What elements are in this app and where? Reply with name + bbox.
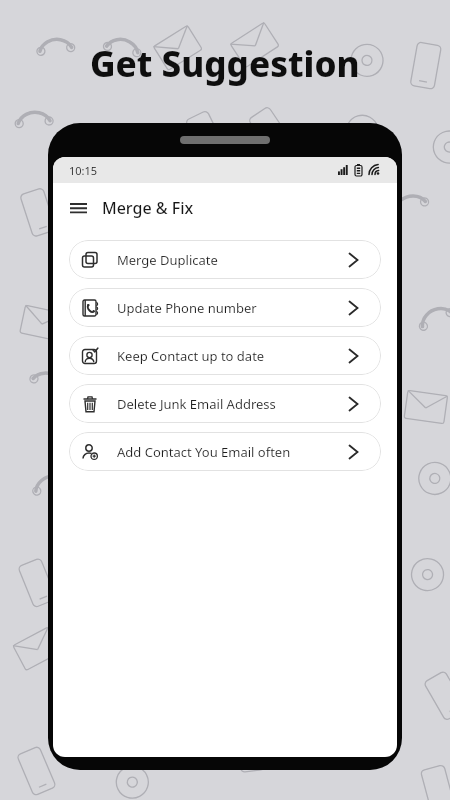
staticText: Delete Junk Email Address — [117, 395, 276, 413]
staticText: Add Contact You Email often — [117, 443, 291, 461]
staticText: Keep Contact up to date — [117, 347, 265, 365]
button[interactable]: Delete Junk Email Address — [69, 384, 381, 423]
button[interactable]: Update Phone number — [69, 288, 381, 327]
staticText: Get Suggestion — [90, 40, 360, 88]
staticText: Merge & Fix — [102, 197, 194, 219]
button[interactable] — [66, 196, 90, 220]
staticText: Update Phone number — [117, 299, 257, 317]
button[interactable]: Merge Duplicate — [69, 240, 381, 279]
button[interactable]: Keep Contact up to date — [69, 336, 381, 375]
button[interactable]: Add Contact You Email often — [69, 432, 381, 471]
staticText: 10:15 — [69, 163, 98, 178]
staticText: Merge Duplicate — [117, 251, 218, 269]
